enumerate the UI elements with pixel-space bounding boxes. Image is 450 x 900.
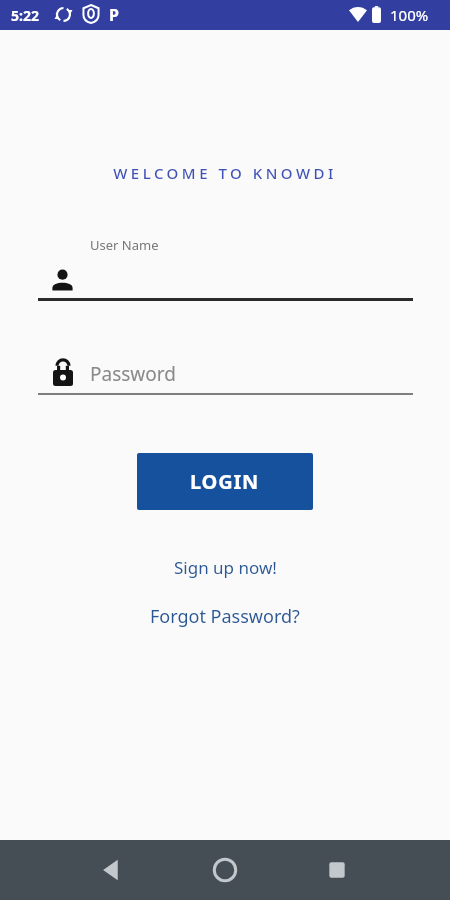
button[interactable] bbox=[96, 854, 128, 886]
button[interactable] bbox=[38, 345, 413, 395]
staticText: 100% bbox=[390, 5, 429, 25]
staticText: Sign up now! bbox=[174, 556, 277, 579]
button[interactable]: Forgot Password? bbox=[146, 600, 304, 633]
button[interactable] bbox=[38, 250, 413, 300]
staticText: Forgot Password? bbox=[150, 604, 300, 629]
staticText: WELCOME TO KNOWDI bbox=[0, 163, 450, 183]
staticText: P bbox=[109, 4, 119, 26]
button[interactable] bbox=[321, 854, 353, 886]
staticText: 5:22 bbox=[11, 6, 39, 25]
button[interactable] bbox=[209, 854, 241, 886]
button[interactable]: LOGIN bbox=[137, 453, 313, 510]
staticText: User Name bbox=[90, 236, 159, 254]
staticText: Password bbox=[90, 361, 176, 387]
button[interactable]: Sign up now! bbox=[170, 552, 281, 583]
staticText: LOGIN bbox=[190, 468, 260, 495]
